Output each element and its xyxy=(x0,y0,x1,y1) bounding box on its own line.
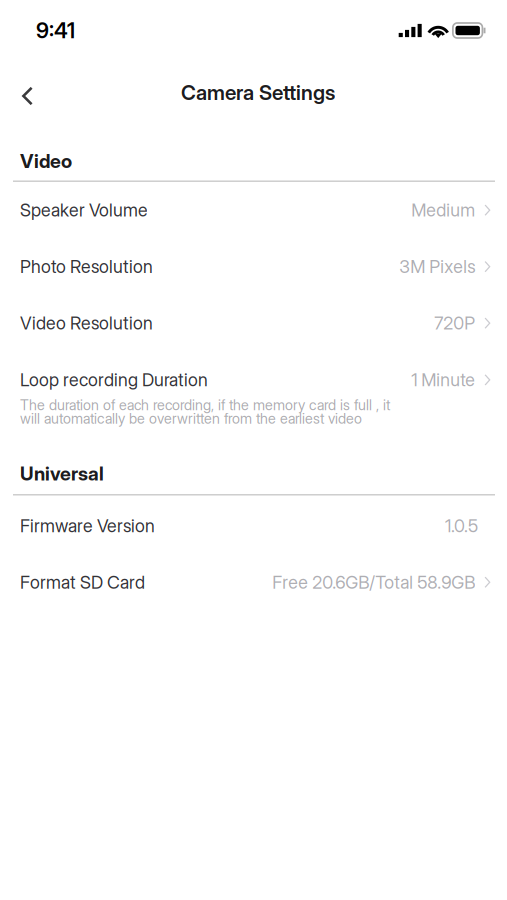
staticText: will automatically be overwritten from t… xyxy=(20,410,362,427)
staticText: Firmware Version xyxy=(20,515,155,536)
staticText: Camera Settings xyxy=(181,80,335,105)
button[interactable]: Speaker Volume xyxy=(0,182,507,238)
button[interactable]: Photo Resolution xyxy=(0,238,507,295)
staticText: The duration of each recording, if the m… xyxy=(20,396,390,414)
staticText: 1 Minute xyxy=(411,369,475,391)
button[interactable]: Video Resolution xyxy=(0,295,507,351)
staticText: Speaker Volume xyxy=(20,199,148,221)
staticText: 720P xyxy=(434,312,475,334)
staticText: Loop recording Duration xyxy=(20,369,208,391)
staticText: Medium xyxy=(411,199,475,221)
staticText: Video Resolution xyxy=(20,312,153,334)
staticText: 9:41 xyxy=(36,18,75,43)
button[interactable]: Loop recording Duration xyxy=(0,351,507,396)
staticText: Format SD Card xyxy=(20,571,145,593)
staticText: Universal xyxy=(20,462,104,485)
staticText: 3M Pixels xyxy=(399,256,475,277)
staticText: 1.0.5 xyxy=(445,515,478,536)
button[interactable]: Back xyxy=(4,70,48,114)
button[interactable]: Format SD Card xyxy=(0,554,507,610)
button[interactable]: Firmware Version xyxy=(0,497,507,554)
staticText: Video xyxy=(20,149,72,173)
staticText: Photo Resolution xyxy=(20,256,153,277)
staticText: Free 20.6GB/Total 58.9GB xyxy=(272,571,475,593)
